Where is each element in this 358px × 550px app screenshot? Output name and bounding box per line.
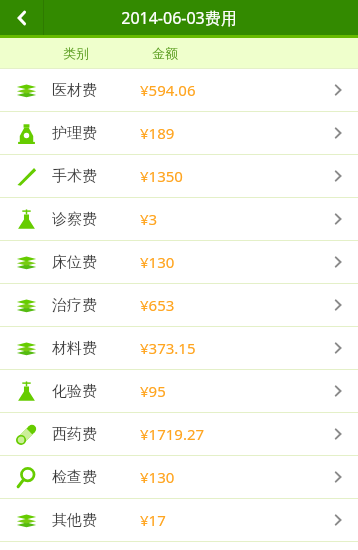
staticText: 西药费 — [52, 425, 140, 444]
staticText: ¥1719.27 — [140, 424, 318, 444]
staticText: 材料费 — [52, 339, 140, 358]
staticText: 医材费 — [52, 81, 140, 100]
staticText: ¥653 — [140, 295, 318, 315]
staticText: ¥130 — [140, 252, 318, 272]
staticText: ¥1350 — [140, 166, 318, 186]
staticText: ¥594.06 — [140, 80, 318, 100]
button[interactable]: Back — [0, 0, 43, 35]
button[interactable]: 手术费 — [0, 155, 358, 197]
staticText: 其他费 — [52, 511, 140, 530]
staticText: ¥373.15 — [140, 338, 318, 358]
staticText: 金额 — [152, 45, 178, 61]
staticText: ¥189 — [140, 123, 318, 143]
button[interactable]: 医材费 — [0, 69, 358, 111]
button[interactable]: 护理费 — [0, 112, 358, 154]
button[interactable]: 检查费 — [0, 456, 358, 498]
staticText: 类别 — [63, 45, 89, 61]
staticText: ¥3 — [140, 209, 318, 229]
button[interactable]: 诊察费 — [0, 198, 358, 240]
staticText: ¥95 — [140, 381, 318, 401]
staticText: 治疗费 — [52, 296, 140, 315]
staticText: ¥17 — [140, 510, 318, 530]
button[interactable]: 化验费 — [0, 370, 358, 412]
button[interactable]: 治疗费 — [0, 284, 358, 326]
staticText: 手术费 — [52, 167, 140, 186]
staticText: 诊察费 — [52, 210, 140, 229]
button[interactable]: 床位费 — [0, 241, 358, 283]
staticText: 护理费 — [52, 124, 140, 143]
button[interactable]: 西药费 — [0, 413, 358, 455]
staticText: ¥130 — [140, 467, 318, 487]
staticText: 床位费 — [52, 253, 140, 272]
staticText: 检查费 — [52, 468, 140, 487]
button[interactable]: 材料费 — [0, 327, 358, 369]
staticText: 化验费 — [52, 382, 140, 401]
staticText: 2014-06-03费用 — [0, 7, 358, 29]
button[interactable]: 其他费 — [0, 499, 358, 541]
